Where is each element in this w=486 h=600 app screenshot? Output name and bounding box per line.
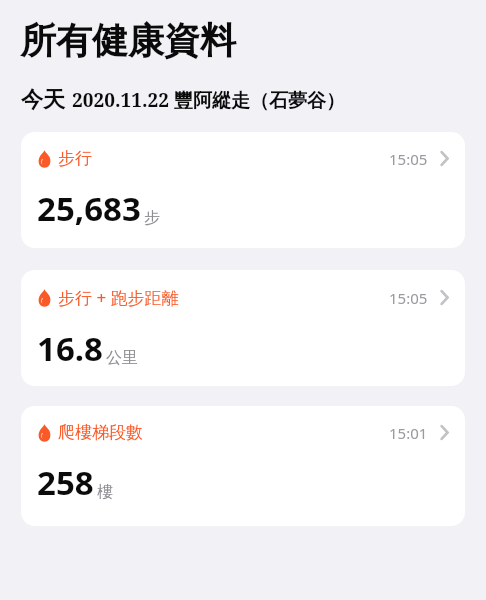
staticText: 步行 (58, 148, 92, 169)
staticText: 所有健康資料 (20, 18, 236, 63)
button[interactable]: 步行 (21, 132, 465, 248)
staticText: 爬樓梯段數 (58, 422, 143, 443)
staticText: 258 (37, 460, 94, 505)
staticText: 16.8 (37, 326, 103, 371)
other: Open 步行 + 跑步距離 details (438, 288, 451, 307)
staticText: 25,683 (37, 186, 141, 231)
staticText: 步 (144, 208, 160, 228)
staticText: 15:05 (389, 288, 428, 308)
staticText: 樓 (97, 482, 113, 502)
button[interactable]: 爬樓梯段數 (21, 406, 465, 526)
staticText: 步行 + 跑步距離 (58, 286, 179, 309)
staticText: 今天 (21, 86, 65, 114)
other: Open 爬樓梯段數 details (438, 423, 451, 442)
staticText: 2020.11.22 豐阿縱走（石夢谷） (72, 87, 345, 113)
staticText: 15:01 (389, 423, 428, 443)
staticText: 15:05 (389, 149, 428, 169)
staticText: 公里 (106, 348, 138, 368)
button[interactable]: 步行 + 跑步距離 (21, 270, 465, 386)
other: Open 步行 details (438, 149, 451, 168)
